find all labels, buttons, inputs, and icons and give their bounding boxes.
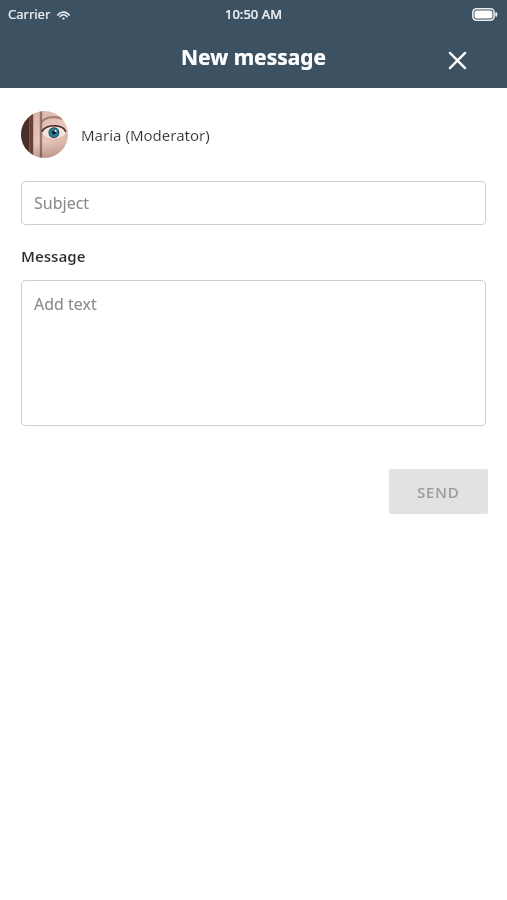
button[interactable]: Subject (21, 181, 486, 225)
staticText: SEND (417, 482, 460, 502)
staticText: Message (21, 246, 86, 266)
staticText: 10:50 AM (225, 5, 283, 23)
button[interactable]: Close (437, 40, 477, 80)
staticText: Subject (34, 192, 90, 214)
button[interactable]: Maria (Moderator) (21, 111, 487, 158)
staticText: Add text (34, 293, 97, 315)
staticText: Carrier (8, 5, 51, 23)
button[interactable]: Add text (21, 280, 486, 426)
button[interactable]: SEND (389, 469, 488, 514)
staticText: Maria (Moderator) (81, 125, 210, 145)
staticText: New message (181, 43, 327, 72)
